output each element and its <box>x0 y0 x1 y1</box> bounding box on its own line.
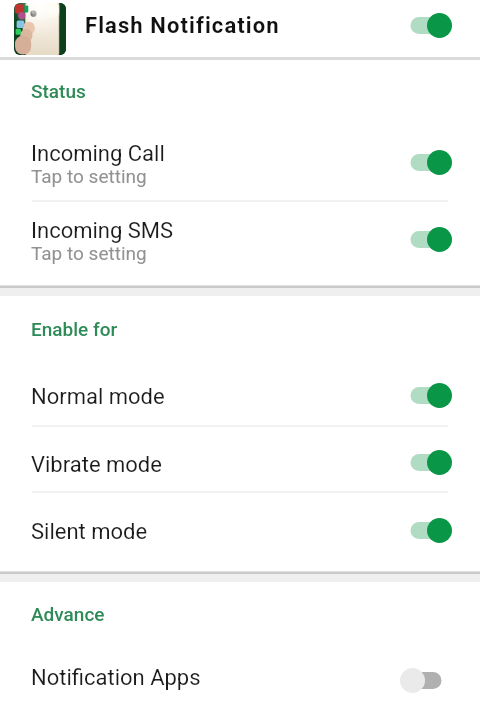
button[interactable]: Incoming Call <box>0 123 480 200</box>
staticText: Notification Apps <box>31 665 201 691</box>
staticText: Normal mode <box>31 384 165 410</box>
staticText: Enable for <box>31 318 118 340</box>
button[interactable]: Silent mode <box>0 493 480 560</box>
button[interactable]: Vibrate mode <box>0 427 480 491</box>
staticText: Flash Notification <box>85 13 280 39</box>
button[interactable]: Incoming SMS <box>0 202 480 279</box>
staticText: Tap to setting <box>31 242 147 264</box>
staticText: Incoming Call <box>31 141 165 167</box>
staticText: Vibrate mode <box>31 452 162 478</box>
staticText: Advance <box>31 603 105 625</box>
staticText: Tap to setting <box>31 165 147 187</box>
staticText: Status <box>31 80 86 102</box>
button[interactable]: Notification Apps <box>0 645 480 712</box>
staticText: Incoming SMS <box>31 218 174 244</box>
button[interactable]: Flash notification master switch <box>400 13 452 38</box>
staticText: Silent mode <box>31 519 148 545</box>
button[interactable]: Normal mode <box>0 360 480 425</box>
